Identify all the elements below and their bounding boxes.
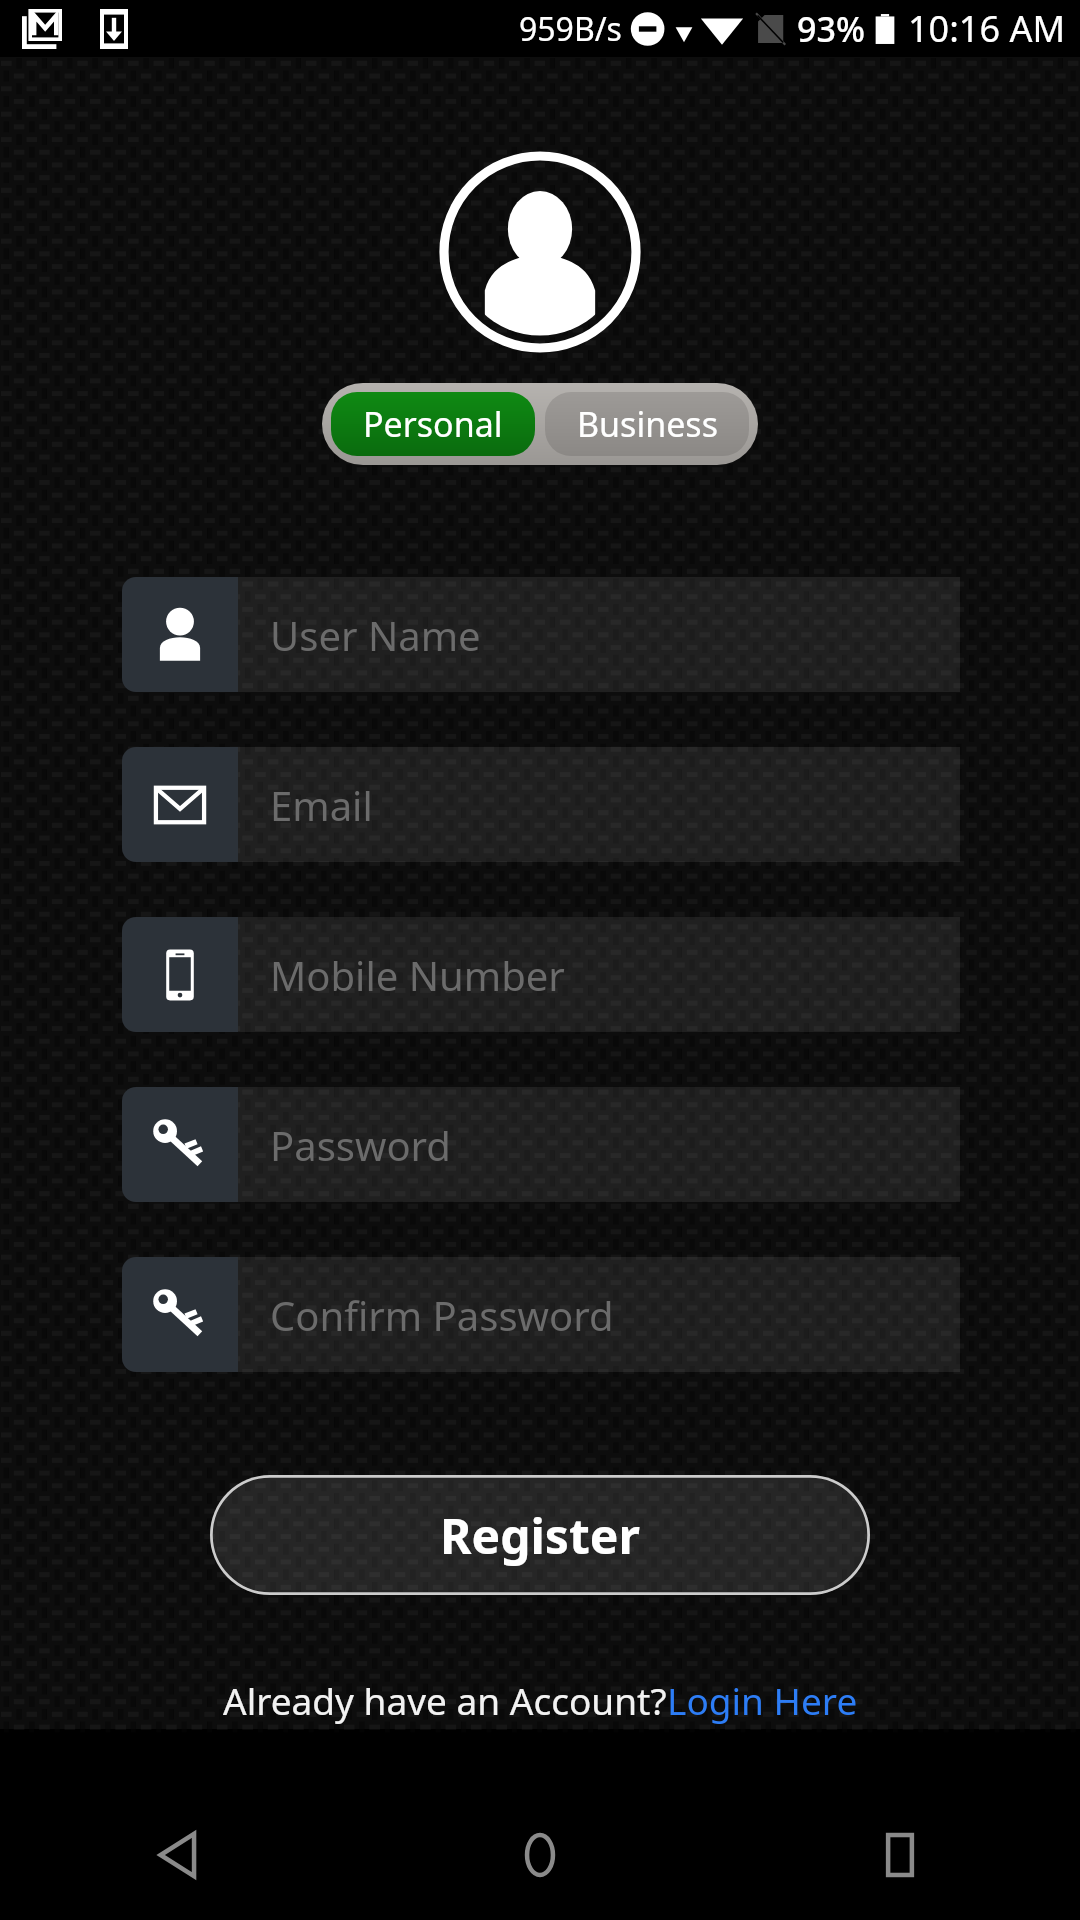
staticText: User Name bbox=[270, 608, 481, 662]
button[interactable]: Email bbox=[122, 747, 960, 862]
staticText: 10:16 AM bbox=[908, 4, 1066, 53]
button[interactable]: Business bbox=[545, 392, 749, 456]
staticText: Password bbox=[270, 1118, 451, 1172]
staticText: Business bbox=[577, 401, 718, 447]
staticText: 93% bbox=[797, 6, 865, 52]
staticText: Personal bbox=[363, 401, 503, 447]
button[interactable]: Confirm Password bbox=[122, 1257, 960, 1372]
staticText: Email bbox=[270, 778, 373, 832]
button[interactable]: Personal bbox=[331, 392, 535, 456]
staticText: Confirm Password bbox=[270, 1288, 614, 1342]
button[interactable]: Back bbox=[0, 1790, 360, 1920]
staticText: Register bbox=[440, 1503, 640, 1568]
button[interactable]: Profile picture bbox=[440, 152, 640, 352]
button[interactable]: Mobile Number bbox=[122, 917, 960, 1032]
button[interactable]: User Name bbox=[122, 577, 960, 692]
button[interactable]: Register bbox=[210, 1475, 870, 1595]
button[interactable]: Home bbox=[360, 1790, 720, 1920]
staticText: Already have an Account? bbox=[223, 1675, 667, 1725]
button[interactable]: Password bbox=[122, 1087, 960, 1202]
staticText: Login Here bbox=[667, 1675, 858, 1725]
staticText: Mobile Number bbox=[270, 948, 565, 1002]
button[interactable]: Recent apps bbox=[720, 1790, 1080, 1920]
button[interactable]: Login Here bbox=[667, 1675, 858, 1725]
staticText: 959B/s bbox=[519, 7, 622, 51]
